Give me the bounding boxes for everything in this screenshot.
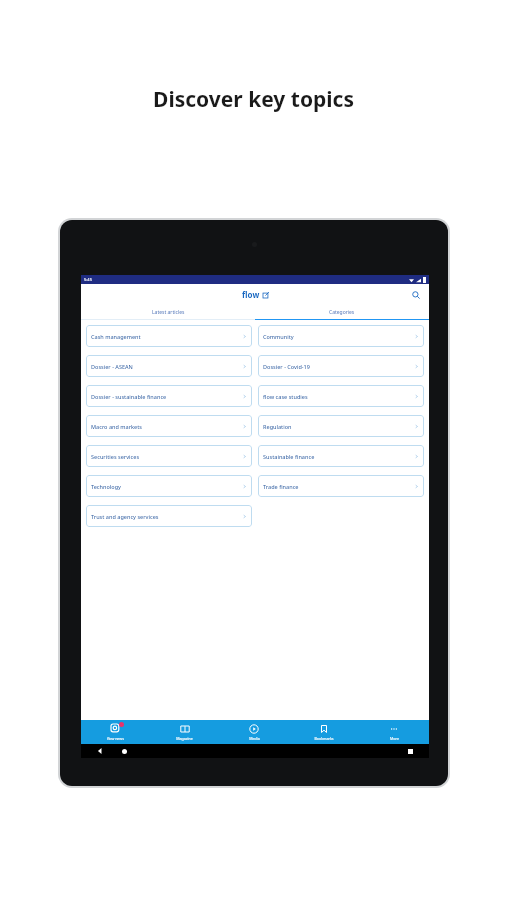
staticText: Dossier - Covid-19 bbox=[263, 363, 414, 370]
button[interactable]: Dossier - sustainable finance bbox=[86, 385, 252, 407]
button[interactable]: Categories bbox=[255, 305, 429, 320]
button[interactable]: Search bbox=[409, 288, 423, 302]
staticText: Discover key topics bbox=[153, 85, 354, 114]
staticText: Dossier - ASEAN bbox=[91, 363, 242, 370]
staticText: Regulation bbox=[263, 423, 414, 430]
staticText: Magazine bbox=[176, 736, 193, 741]
staticText: flow news bbox=[107, 736, 124, 741]
staticText: Media bbox=[249, 736, 260, 741]
button[interactable]: Trade finance bbox=[258, 475, 424, 497]
button[interactable]: Dossier - ASEAN bbox=[86, 355, 252, 377]
staticText: More bbox=[390, 736, 399, 741]
button[interactable]: Community bbox=[258, 325, 424, 347]
button[interactable]: Back bbox=[97, 748, 103, 754]
staticText: Trade finance bbox=[263, 483, 414, 490]
button[interactable]: Macro and markets bbox=[86, 415, 252, 437]
staticText: Trust and agency services bbox=[91, 513, 242, 520]
button[interactable]: Cash management bbox=[86, 325, 252, 347]
staticText: 5:45 bbox=[84, 277, 92, 282]
button[interactable]: Home bbox=[121, 748, 127, 754]
button[interactable]: Media bbox=[219, 720, 289, 744]
staticText: Latest articles bbox=[152, 309, 185, 316]
staticText: Community bbox=[263, 333, 414, 340]
button[interactable]: flow case studies bbox=[258, 385, 424, 407]
staticText: flow bbox=[242, 289, 260, 300]
button[interactable]: Trust and agency services bbox=[86, 505, 252, 527]
button[interactable]: Regulation bbox=[258, 415, 424, 437]
staticText: flow case studies bbox=[263, 393, 414, 400]
button[interactable]: Sustainable finance bbox=[258, 445, 424, 467]
button[interactable]: Securities services bbox=[86, 445, 252, 467]
button[interactable]: Bookmarks bbox=[289, 720, 359, 744]
button[interactable]: Latest articles bbox=[81, 305, 255, 320]
staticText: Securities services bbox=[91, 453, 242, 460]
button[interactable]: More bbox=[359, 720, 429, 744]
staticText: Categories bbox=[329, 309, 355, 316]
button[interactable]: flow news bbox=[81, 720, 150, 744]
staticText: Sustainable finance bbox=[263, 453, 414, 460]
staticText: Cash management bbox=[91, 333, 242, 340]
staticText: Dossier - sustainable finance bbox=[91, 393, 242, 400]
button[interactable]: Technology bbox=[86, 475, 252, 497]
button[interactable]: Magazine bbox=[150, 720, 219, 744]
staticText: Bookmarks bbox=[314, 736, 334, 741]
staticText: Macro and markets bbox=[91, 423, 242, 430]
staticText: Technology bbox=[91, 483, 242, 490]
button[interactable]: Dossier - Covid-19 bbox=[258, 355, 424, 377]
